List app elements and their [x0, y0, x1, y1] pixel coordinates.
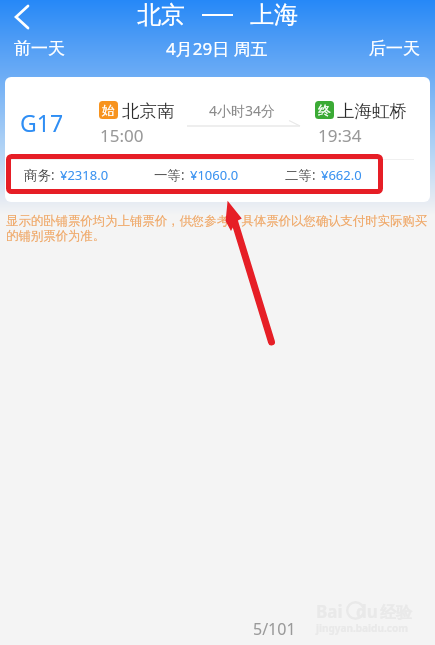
- staticText: du: [356, 600, 378, 623]
- staticText: ¥662.0: [321, 166, 362, 184]
- staticText: 二等:: [285, 166, 316, 184]
- staticText: 上海虹桥: [337, 100, 407, 122]
- staticText: ¥2318.0: [60, 166, 109, 184]
- staticText: ¥1060.0: [190, 166, 239, 184]
- staticText: 经验: [380, 603, 412, 623]
- staticText: 5/101: [253, 618, 296, 640]
- staticText: Bai: [316, 600, 343, 623]
- staticText: 商务:: [24, 166, 55, 184]
- button[interactable]: 前一天: [0, 38, 166, 59]
- staticText: jingyan.baidu.com: [316, 621, 408, 635]
- button[interactable]: Back: [0, 0, 44, 33]
- staticText: 19:34: [318, 124, 362, 147]
- staticText: 北京南: [122, 100, 175, 122]
- button[interactable]: G17: [5, 77, 430, 202]
- staticText: 显示的卧铺票价均为上铺票价，供您参考，具体票价以您确认支付时实际购买的铺别票价为…: [6, 213, 434, 244]
- button[interactable]: 后一天: [268, 38, 435, 59]
- staticText: 终: [318, 102, 331, 118]
- staticText: 上海: [250, 0, 298, 30]
- staticText: 后一天: [369, 38, 420, 59]
- staticText: 北京: [137, 0, 185, 30]
- staticText: 前一天: [14, 38, 65, 59]
- staticText: 4月29日 周五: [166, 37, 268, 60]
- staticText: G17: [20, 107, 64, 138]
- staticText: 15:00: [100, 124, 144, 147]
- staticText: 一等:: [154, 166, 185, 184]
- staticText: 4小时34分: [209, 101, 276, 120]
- staticText: 始: [102, 102, 115, 118]
